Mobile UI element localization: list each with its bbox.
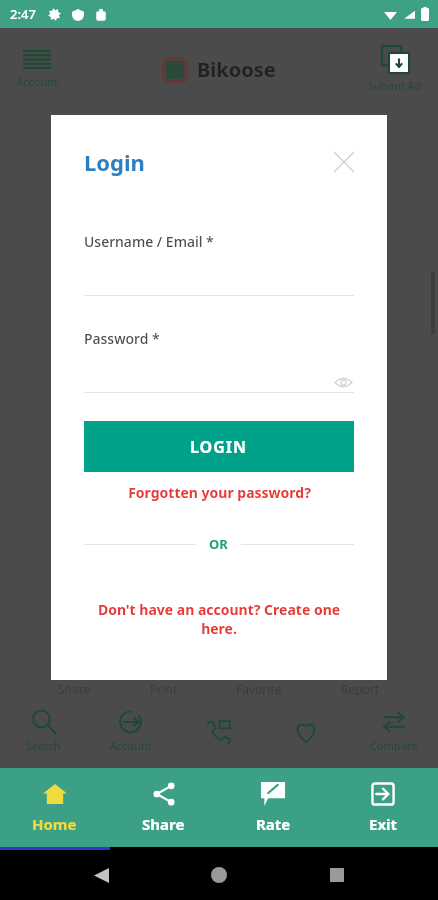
button[interactable]: Back	[84, 858, 118, 892]
button[interactable]: Show password	[332, 372, 354, 392]
button[interactable]: Home	[202, 858, 236, 892]
staticText: Print	[150, 681, 178, 697]
staticText: LOGIN	[190, 436, 248, 458]
staticText: Username / Email *	[84, 232, 214, 251]
button[interactable]: Account	[87, 699, 174, 763]
button[interactable]: Action	[174, 699, 262, 763]
staticText: Share	[142, 814, 185, 834]
button[interactable]: Recents	[320, 858, 354, 892]
button[interactable]: Search	[0, 699, 87, 763]
button[interactable]: Account menu	[16, 50, 58, 89]
staticText: Bikoose	[197, 56, 276, 83]
button[interactable]: Exit	[328, 768, 438, 847]
button[interactable]: Home	[0, 768, 109, 847]
staticText: Account	[16, 74, 58, 89]
staticText: Exit	[369, 814, 398, 834]
staticText: Forgotten your password?	[128, 483, 311, 502]
button[interactable]: Bikoose	[162, 56, 276, 83]
staticText: Rate	[256, 814, 291, 834]
staticText: Compare	[370, 738, 418, 753]
staticText: 2:47	[10, 5, 36, 23]
button[interactable]: Compare	[350, 699, 438, 763]
button[interactable]: Submit Ad	[368, 46, 422, 93]
staticText: Search	[26, 738, 61, 753]
button[interactable]: Action	[262, 699, 350, 763]
staticText: Submit Ad	[368, 78, 422, 93]
staticText: Login	[84, 147, 145, 177]
button[interactable]: Password field	[84, 372, 354, 392]
button[interactable]: Share	[109, 768, 218, 847]
staticText: Home	[32, 814, 77, 834]
staticText: Don't have an account? Create one here.	[84, 600, 354, 638]
staticText: Password *	[84, 329, 160, 348]
button[interactable]: LOGIN	[84, 421, 354, 472]
staticText: Report	[341, 681, 380, 697]
staticText: Account	[110, 738, 152, 753]
staticText: OR	[209, 535, 228, 553]
button[interactable]: Close	[326, 144, 362, 180]
button[interactable]: Rate	[218, 768, 328, 847]
staticText: Favorite	[236, 681, 282, 697]
button[interactable]: Forgotten your password?	[84, 483, 354, 502]
staticText: Share	[58, 681, 91, 697]
button[interactable]: Don't have an account? Create one here.	[84, 600, 354, 638]
